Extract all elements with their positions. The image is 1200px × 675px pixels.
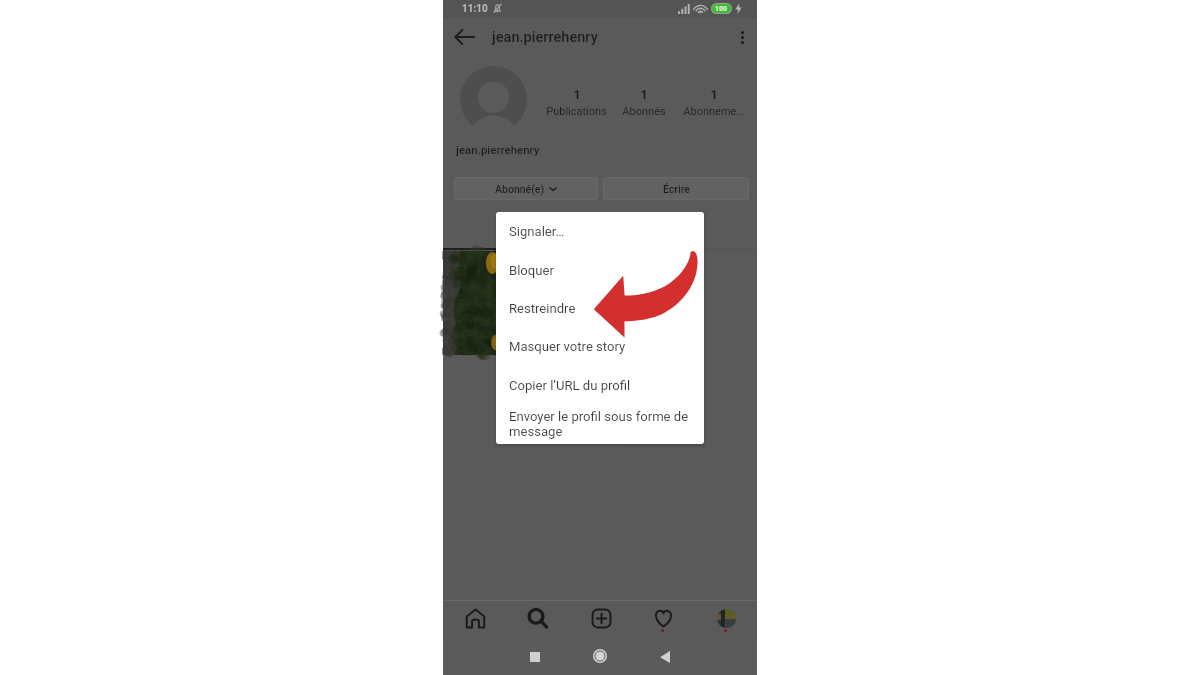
staticText: Abonné(e) <box>495 183 545 195</box>
button[interactable]: 1 <box>679 87 747 118</box>
staticText: Abonnés <box>622 105 666 118</box>
button[interactable]: Copier l’URL du profil <box>496 378 704 416</box>
button[interactable]: Profile <box>717 609 736 628</box>
staticText: Signaler… <box>509 224 697 239</box>
staticText: 11:10 <box>462 3 488 15</box>
button[interactable]: Home <box>586 643 614 671</box>
staticText: Envoyer le profil sous forme de message <box>509 409 697 439</box>
staticText: Écrire <box>663 183 690 195</box>
staticText: Copier l’URL du profil <box>509 378 697 393</box>
button[interactable] <box>443 251 547 355</box>
button[interactable]: Bloquer <box>496 263 704 301</box>
staticText: 1 <box>640 87 648 102</box>
button[interactable]: Masquer votre story <box>496 339 704 377</box>
button[interactable]: Back <box>443 18 487 56</box>
staticText: Restreindre <box>509 301 697 316</box>
button[interactable]: Envoyer le profil sous forme de message <box>496 409 704 441</box>
button[interactable]: Home <box>459 602 491 634</box>
staticText: Bloquer <box>509 263 697 278</box>
button[interactable]: 1 <box>542 87 610 118</box>
staticText: Publications <box>546 105 607 118</box>
staticText: 100 <box>715 5 728 13</box>
staticText: Masquer votre story <box>509 339 697 354</box>
staticText: Abonneme… <box>683 105 744 118</box>
button[interactable]: Back <box>651 643 679 671</box>
button[interactable]: More options <box>725 18 761 56</box>
button[interactable]: Signaler… <box>496 224 704 262</box>
staticText: jean.pierrehenry <box>456 143 540 156</box>
staticText: 1 <box>573 87 581 102</box>
button[interactable]: Activity <box>647 602 679 634</box>
button[interactable]: Recent apps <box>521 643 549 671</box>
button[interactable]: 1 <box>610 87 678 118</box>
button[interactable]: Create <box>585 602 617 634</box>
staticText: 1 <box>710 87 718 102</box>
button[interactable]: Écrire <box>603 177 749 200</box>
button[interactable]: Search <box>522 602 554 634</box>
staticText: jean.pierrehenry <box>492 28 598 45</box>
button[interactable]: Restreindre <box>496 301 704 339</box>
button[interactable]: Abonné(e) <box>454 177 598 200</box>
